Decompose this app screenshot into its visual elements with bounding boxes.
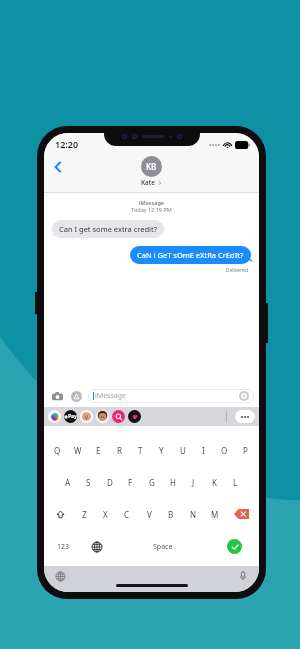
staticText: 123 xyxy=(57,542,70,552)
button[interactable]: Dictation xyxy=(235,568,251,584)
button[interactable]: More apps xyxy=(235,410,255,423)
button[interactable]: O xyxy=(214,434,235,466)
button[interactable]: iMessage xyxy=(88,389,254,403)
button[interactable]: Q xyxy=(47,434,67,466)
button[interactable]: F xyxy=(120,466,141,498)
button[interactable]: KB xyxy=(141,156,162,187)
staticText: Today 12:19 PM xyxy=(44,206,259,213)
staticText: iMessage xyxy=(44,199,259,206)
staticText: Delivered xyxy=(44,267,248,274)
button[interactable]: W xyxy=(67,434,88,466)
staticText: R xyxy=(117,445,122,456)
staticText: X xyxy=(103,509,108,520)
staticText: L xyxy=(233,477,238,488)
staticText: U xyxy=(180,445,186,456)
button[interactable]: U xyxy=(172,434,193,466)
button[interactable]: V xyxy=(138,498,160,530)
button[interactable]: X xyxy=(95,498,116,530)
button[interactable]: Images xyxy=(112,410,125,423)
staticText: P xyxy=(243,445,248,456)
staticText: D xyxy=(107,477,113,488)
button[interactable]: T xyxy=(130,434,151,466)
button[interactable]: M xyxy=(204,498,226,530)
button[interactable]: Photos xyxy=(48,410,61,423)
staticText: A xyxy=(65,477,71,488)
staticText: Z xyxy=(82,509,87,520)
button[interactable]: Backspace xyxy=(226,498,256,530)
button[interactable]: Can I get some extra credit? xyxy=(52,220,164,238)
button[interactable]: Send xyxy=(213,530,256,563)
staticText: Can I get some extra credit? xyxy=(59,224,157,234)
button[interactable]: E xyxy=(88,434,109,466)
staticText: S xyxy=(86,477,91,488)
staticText: E xyxy=(96,445,101,456)
button[interactable]: A xyxy=(57,466,78,498)
staticText: H xyxy=(170,477,176,488)
button[interactable]: Back xyxy=(48,157,68,177)
button[interactable]: I xyxy=(193,434,214,466)
button[interactable]: Space xyxy=(113,530,213,563)
staticText: N xyxy=(190,509,197,520)
staticText: I xyxy=(202,445,205,456)
button[interactable]: J xyxy=(183,466,204,498)
button[interactable]: B xyxy=(160,498,182,530)
button[interactable]: H xyxy=(162,466,183,498)
button[interactable]: G xyxy=(141,466,162,498)
button[interactable]: Shift xyxy=(47,498,74,530)
staticText: F xyxy=(128,477,133,488)
button[interactable]: Change language xyxy=(52,568,68,584)
button[interactable]: Change language xyxy=(80,530,113,563)
staticText: Q xyxy=(54,445,61,456)
staticText: T xyxy=(138,445,143,456)
staticText: C xyxy=(124,509,130,520)
button[interactable]: K xyxy=(204,466,225,498)
button[interactable]: Camera xyxy=(49,388,65,404)
staticText: Pay xyxy=(68,413,77,420)
button[interactable]: C xyxy=(116,498,138,530)
staticText: 12:20 xyxy=(55,138,79,150)
button[interactable]: CaN i GeT sOmE eXtRa CrEdIt? xyxy=(130,246,251,264)
staticText: G xyxy=(149,477,155,488)
button[interactable]: L xyxy=(225,466,246,498)
button[interactable]: Apps xyxy=(68,388,84,404)
button[interactable]: N xyxy=(182,498,204,530)
button[interactable]: D xyxy=(99,466,120,498)
staticText: O xyxy=(221,445,228,456)
staticText: K xyxy=(212,477,217,488)
button[interactable]: Digital Touch xyxy=(128,410,141,423)
button[interactable]: R xyxy=(109,434,130,466)
staticText: KB xyxy=(146,161,157,172)
button[interactable]: S xyxy=(78,466,99,498)
staticText: J xyxy=(192,477,195,488)
button[interactable]: Y xyxy=(151,434,172,466)
staticText: Y xyxy=(159,445,164,456)
staticText: CaN i GeT sOmE eXtRa CrEdIt? xyxy=(137,250,244,260)
button[interactable]: P xyxy=(235,434,256,466)
staticText: V xyxy=(147,509,152,520)
button[interactable]: Memoji xyxy=(96,410,109,423)
staticText: iMessage xyxy=(95,391,126,401)
button[interactable]: Apple Pay xyxy=(64,410,77,423)
button[interactable]: 123 xyxy=(47,530,80,563)
staticText: Kate xyxy=(141,178,156,187)
staticText: Space xyxy=(153,542,173,552)
staticText: B xyxy=(168,509,174,520)
button[interactable]: Memoji xyxy=(80,410,93,423)
button[interactable]: Z xyxy=(74,498,95,530)
staticText: M xyxy=(211,509,219,520)
staticText: W xyxy=(74,445,82,456)
